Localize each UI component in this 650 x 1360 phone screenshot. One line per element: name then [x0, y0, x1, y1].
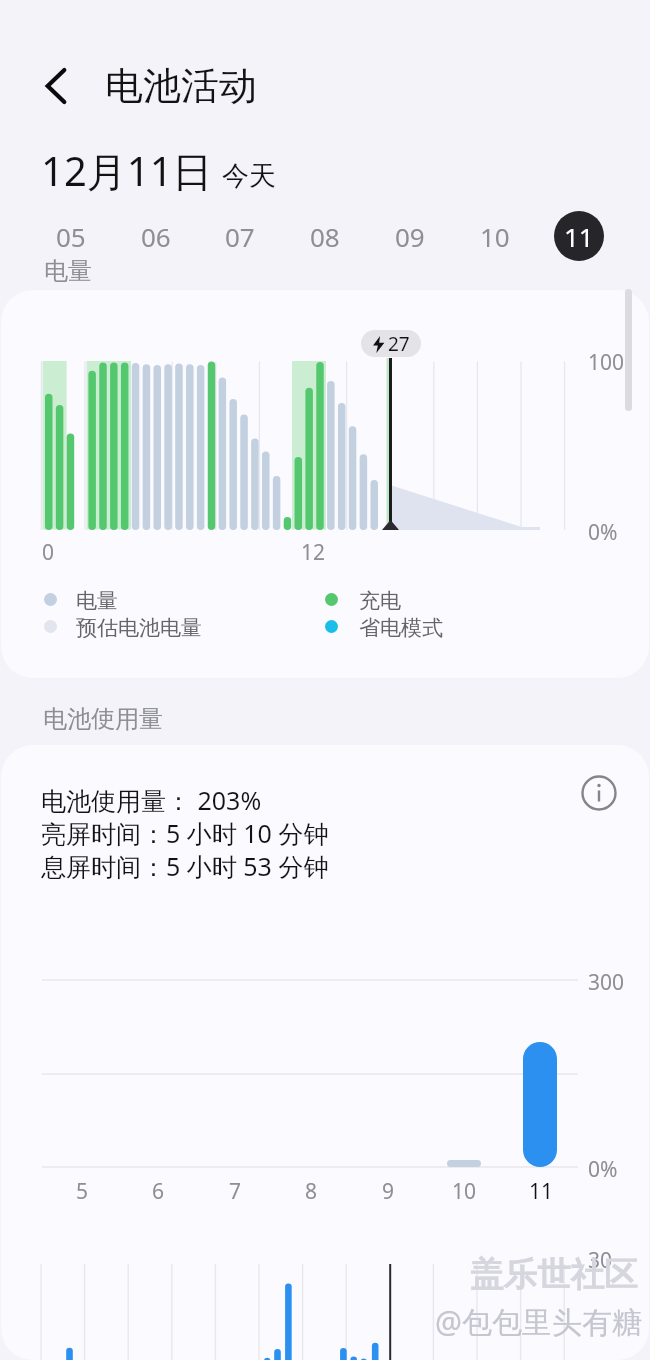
staticText: 06	[141, 219, 171, 254]
staticText: 0%	[588, 518, 618, 547]
staticText: 今天	[222, 159, 276, 193]
staticText: 省电模式	[359, 615, 443, 641]
staticText: 6	[152, 1177, 165, 1206]
staticText: 11	[564, 219, 594, 254]
button[interactable]: 05	[46, 211, 96, 261]
staticText: 08	[310, 219, 340, 254]
staticText: 电池活动	[105, 62, 257, 110]
button[interactable]: 11	[516, 1175, 566, 1207]
staticText: 盖乐世社区	[470, 1254, 638, 1296]
staticText: 0%	[588, 1155, 618, 1184]
button[interactable]: 8	[286, 1175, 336, 1207]
button[interactable]: 7	[210, 1175, 260, 1207]
staticText: 09	[395, 219, 425, 254]
staticText: 100	[588, 348, 625, 377]
staticText: 30	[588, 1246, 613, 1275]
staticText: 电池使用量： 203%	[41, 783, 262, 817]
staticText: 11	[529, 1177, 554, 1206]
staticText: 10	[480, 219, 510, 254]
staticText: 0	[42, 538, 55, 567]
staticText: 05	[56, 219, 86, 254]
staticText: 7	[229, 1177, 242, 1206]
button[interactable]: 9	[363, 1175, 413, 1207]
staticText: 07	[225, 219, 255, 254]
staticText: 300	[588, 968, 625, 997]
staticText: 27	[388, 331, 410, 357]
staticText: 8	[305, 1177, 318, 1206]
staticText: 10	[452, 1177, 477, 1206]
staticText: 预估电池电量	[76, 615, 202, 641]
staticText: 亮屏时间：5 小时 10 分钟	[41, 816, 329, 850]
staticText: 电池使用量	[43, 704, 163, 734]
button[interactable]: 10	[439, 1175, 489, 1207]
button[interactable]: 08	[300, 211, 350, 261]
staticText: 息屏时间：5 小时 53 分钟	[41, 849, 329, 883]
staticText: 充电	[359, 588, 401, 614]
staticText: 9	[382, 1177, 395, 1206]
button[interactable]: 07	[215, 211, 265, 261]
button[interactable]: 6	[133, 1175, 183, 1207]
button[interactable]: Info	[575, 769, 623, 817]
button[interactable]: Back	[30, 60, 82, 112]
staticText: 电量	[76, 588, 118, 614]
button[interactable]: 10	[470, 211, 520, 261]
button[interactable]: 09	[385, 211, 435, 261]
button[interactable]: 5	[57, 1175, 107, 1207]
staticText: 电量	[44, 256, 92, 286]
staticText: 5	[76, 1177, 89, 1206]
button[interactable]: 11	[554, 211, 604, 261]
staticText: 12	[301, 538, 326, 567]
button[interactable]: 06	[131, 211, 181, 261]
staticText: @包包里头有糖	[435, 1301, 642, 1342]
staticText: 12月11日	[41, 143, 213, 198]
